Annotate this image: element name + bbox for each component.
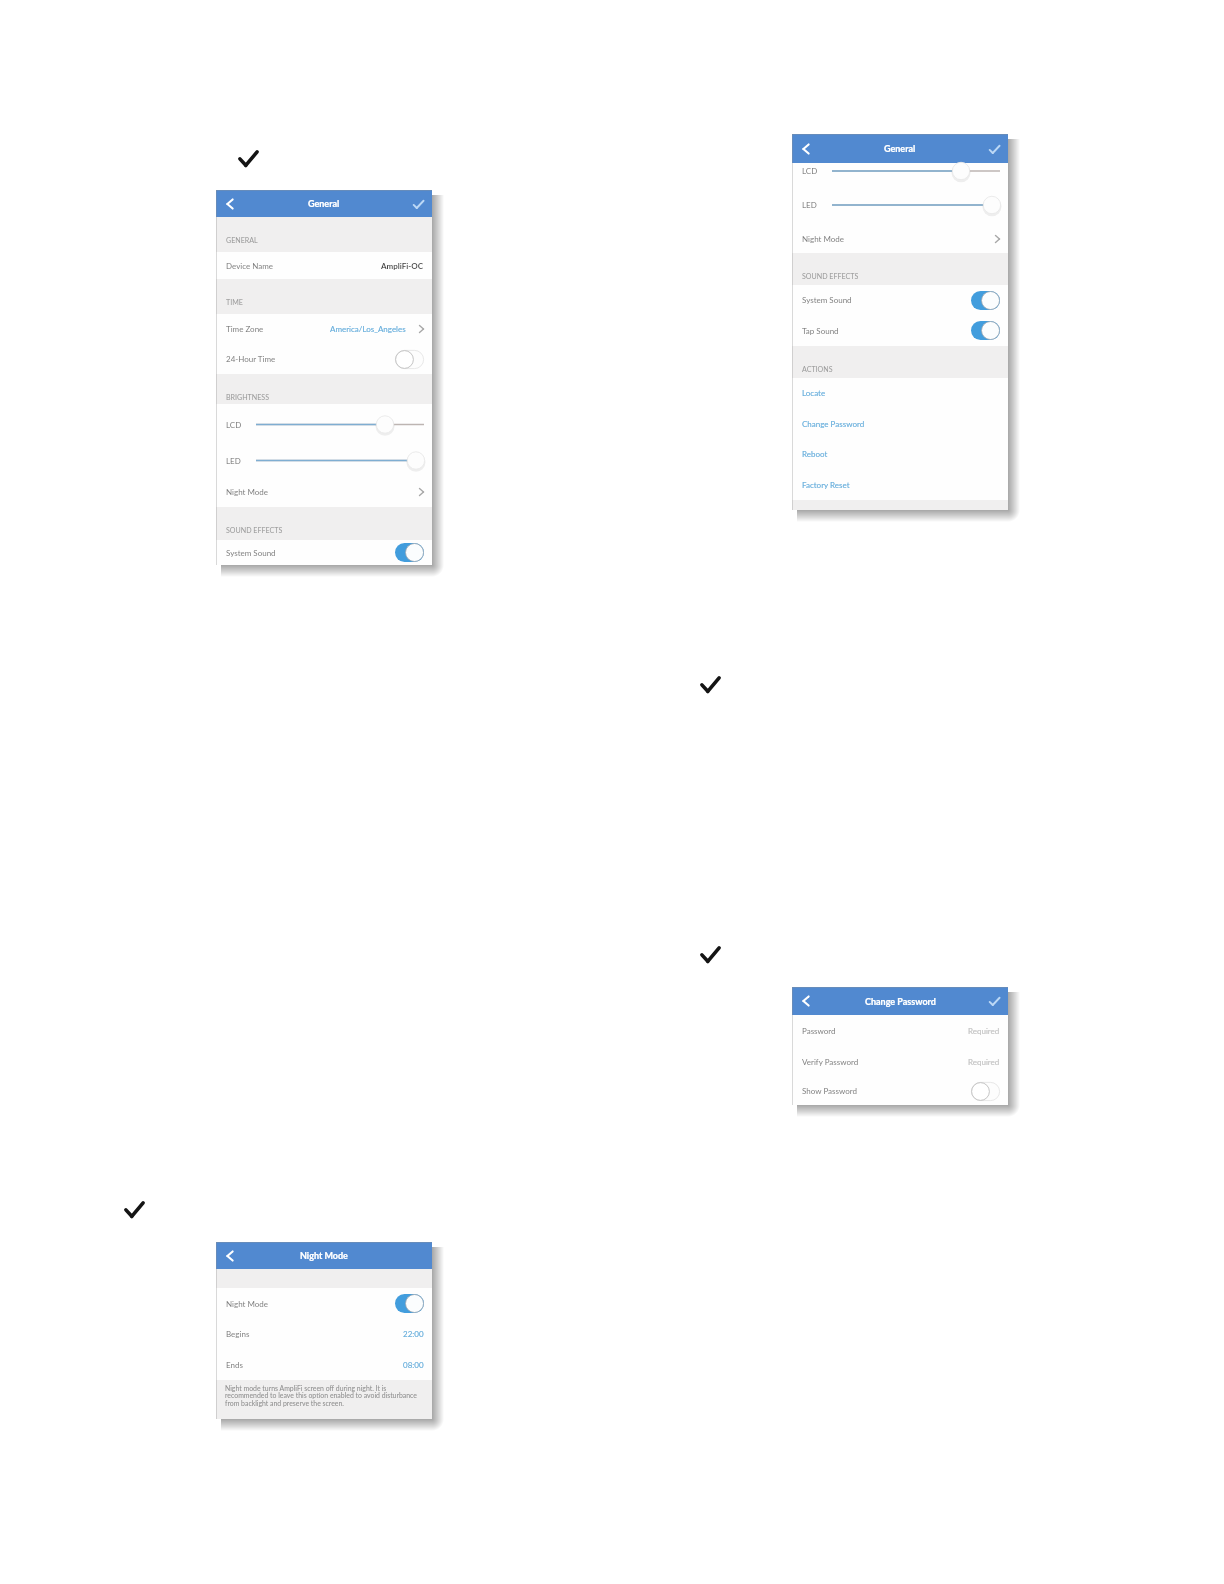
button[interactable]: LED: [216, 440, 432, 476]
button[interactable]: System Sound: [792, 285, 1008, 315]
button[interactable]: [971, 321, 1000, 340]
button[interactable]: Confirm: [410, 196, 426, 212]
staticText: GENERAL: [226, 236, 258, 245]
staticText: TIME: [226, 298, 243, 307]
staticText: Show Password: [802, 1086, 857, 1096]
staticText: Night mode turns AmpliFi screen off duri…: [225, 1384, 419, 1408]
staticText: System Sound: [226, 548, 276, 558]
button[interactable]: Time Zone: [216, 314, 432, 344]
staticText: Change Password: [802, 419, 865, 429]
button[interactable]: Change Password: [792, 408, 1008, 439]
button[interactable]: Begins: [216, 1319, 432, 1349]
button[interactable]: 24-Hour Time: [216, 344, 432, 374]
staticText: General: [308, 198, 340, 209]
staticText: Time Zone: [226, 324, 264, 334]
button[interactable]: System Sound: [216, 540, 432, 565]
button[interactable]: Password: [792, 1015, 1008, 1046]
button[interactable]: Confirm: [986, 141, 1002, 157]
staticText: Night Mode: [226, 1299, 268, 1309]
staticText: Night Mode: [226, 487, 268, 497]
button[interactable]: LED: [792, 190, 1008, 225]
staticText: America/Los_Angeles: [330, 324, 406, 334]
staticText: System Sound: [802, 295, 852, 305]
button[interactable]: [395, 350, 424, 369]
button[interactable]: Back: [798, 993, 814, 1009]
staticText: Begins: [226, 1329, 250, 1339]
staticText: LED: [226, 456, 241, 466]
button[interactable]: Back: [222, 1248, 238, 1264]
button[interactable]: Verify Password: [792, 1046, 1008, 1077]
staticText: Ends: [226, 1360, 243, 1370]
staticText: Change Password: [865, 996, 936, 1007]
staticText: Night Mode: [300, 1250, 348, 1261]
staticText: Reboot: [802, 449, 828, 459]
staticText: General: [884, 143, 916, 154]
staticText: Required: [968, 1057, 1000, 1067]
button[interactable]: Night Mode: [216, 1288, 432, 1319]
staticText: 24-Hour Time: [226, 354, 276, 364]
staticText: LED: [802, 200, 817, 210]
button[interactable]: [395, 1294, 424, 1313]
button[interactable]: Night Mode: [216, 476, 432, 507]
staticText: SOUND EFFECTS: [226, 526, 283, 535]
button[interactable]: Back: [222, 196, 238, 212]
button[interactable]: [971, 291, 1000, 310]
staticText: ACTIONS: [802, 365, 833, 374]
staticText: Password: [802, 1026, 836, 1036]
staticText: Locate: [802, 388, 826, 398]
staticText: Tap Sound: [802, 326, 839, 336]
button[interactable]: Back: [798, 141, 814, 157]
button[interactable]: Reboot: [792, 439, 1008, 469]
staticText: BRIGHTNESS: [226, 393, 270, 402]
button[interactable]: Confirm: [986, 993, 1002, 1009]
staticText: Required: [968, 1026, 1000, 1036]
staticText: SOUND EFFECTS: [802, 272, 859, 281]
staticText: Factory Reset: [802, 480, 850, 490]
button[interactable]: [971, 1082, 1000, 1101]
button[interactable]: LCD: [216, 404, 432, 440]
button[interactable]: Device Name: [216, 252, 432, 279]
staticText: 08:00: [403, 1360, 424, 1370]
staticText: Verify Password: [802, 1057, 859, 1067]
staticText: LCD: [226, 420, 242, 430]
button[interactable]: Night Mode: [792, 225, 1008, 253]
button[interactable]: Tap Sound: [792, 315, 1008, 346]
button[interactable]: Factory Reset: [792, 469, 1008, 500]
button[interactable]: LCD: [792, 163, 1008, 190]
button[interactable]: Show Password: [792, 1077, 1008, 1105]
staticText: 22:00: [403, 1329, 424, 1339]
staticText: Device Name: [226, 261, 273, 271]
button[interactable]: Locate: [792, 378, 1008, 408]
staticText: AmpliFi-OC: [381, 261, 424, 271]
staticText: LCD: [802, 166, 818, 176]
staticText: Night Mode: [802, 234, 844, 244]
button[interactable]: Ends: [216, 1349, 432, 1380]
button[interactable]: [395, 543, 424, 562]
